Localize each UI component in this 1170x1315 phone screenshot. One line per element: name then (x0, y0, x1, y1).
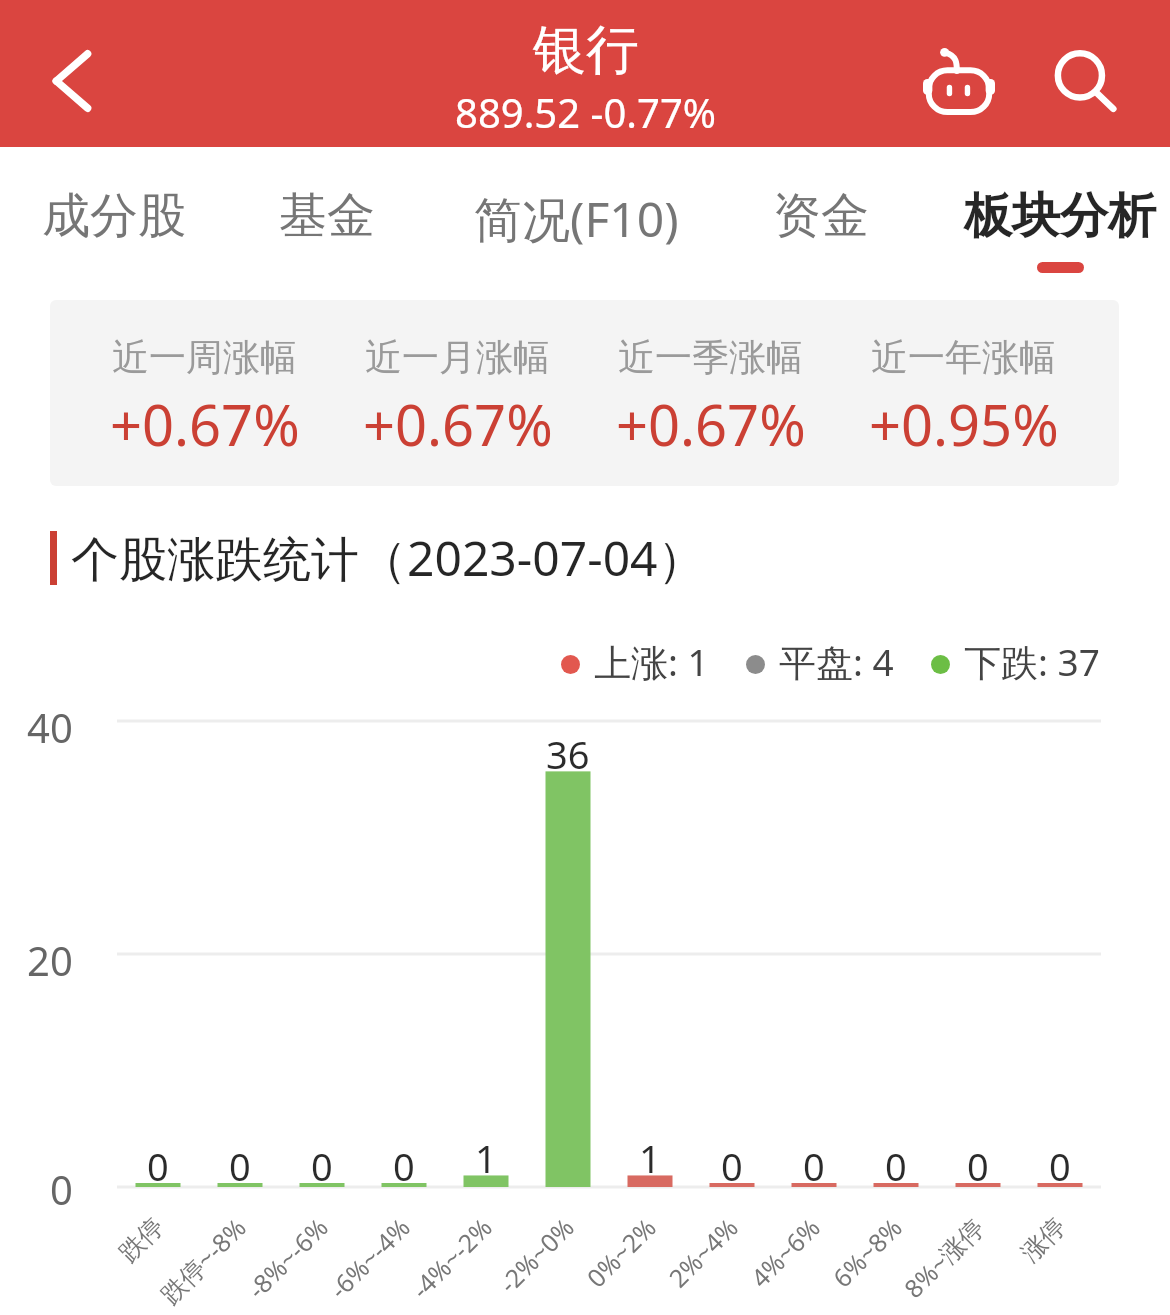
staticText: +0.95% (869, 386, 1059, 462)
staticText: 成分股 (42, 186, 186, 246)
staticText: 下跌: 37 (964, 636, 1100, 687)
button[interactable]: 基金 (227, 150, 427, 290)
staticText: 基金 (279, 186, 375, 246)
staticText: +0.67% (616, 386, 806, 462)
button[interactable]: 成分股 (14, 150, 214, 290)
staticText: 近一季涨幅 (618, 334, 803, 381)
button[interactable]: AI assistant (899, 5, 1019, 152)
staticText: 板块分析 (964, 186, 1156, 246)
staticText: 个股涨跌统计（2023-07-04） (71, 525, 706, 591)
button[interactable]: Back (3, 7, 145, 154)
staticText: 889.52 -0.77% (455, 85, 716, 139)
button[interactable]: 资金 (721, 150, 921, 290)
staticText: +0.67% (110, 386, 300, 462)
staticText: 简况(F10) (474, 186, 679, 252)
button[interactable]: Search (1026, 9, 1146, 156)
staticText: 资金 (773, 186, 869, 246)
staticText: +0.67% (363, 386, 553, 462)
staticText: 近一周涨幅 (112, 334, 297, 381)
staticText: 近一年涨幅 (871, 334, 1056, 381)
staticText: 近一月涨幅 (365, 334, 550, 381)
button[interactable]: 简况(F10) (456, 150, 696, 290)
button[interactable]: 板块分析 (950, 150, 1170, 290)
staticText: 平盘: 4 (779, 636, 894, 687)
staticText: 上涨: 1 (594, 636, 709, 687)
staticText: 银行 (533, 17, 639, 84)
